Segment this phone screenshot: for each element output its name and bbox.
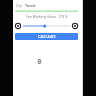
staticText: City — [16, 3, 22, 8]
button[interactable] — [23, 22, 70, 30]
button[interactable]: CALCULATE — [15, 33, 78, 40]
button[interactable]: Decrease fan speed — [15, 23, 21, 29]
button[interactable]: City — [16, 3, 78, 8]
staticText: Tarait — [25, 3, 36, 8]
staticText: CALCULATE — [38, 35, 56, 39]
staticText: Fan Working Hours : 103 % — [26, 14, 68, 18]
other: Result placeholder — [37, 59, 42, 64]
button[interactable]: Increase fan speed — [72, 23, 78, 29]
